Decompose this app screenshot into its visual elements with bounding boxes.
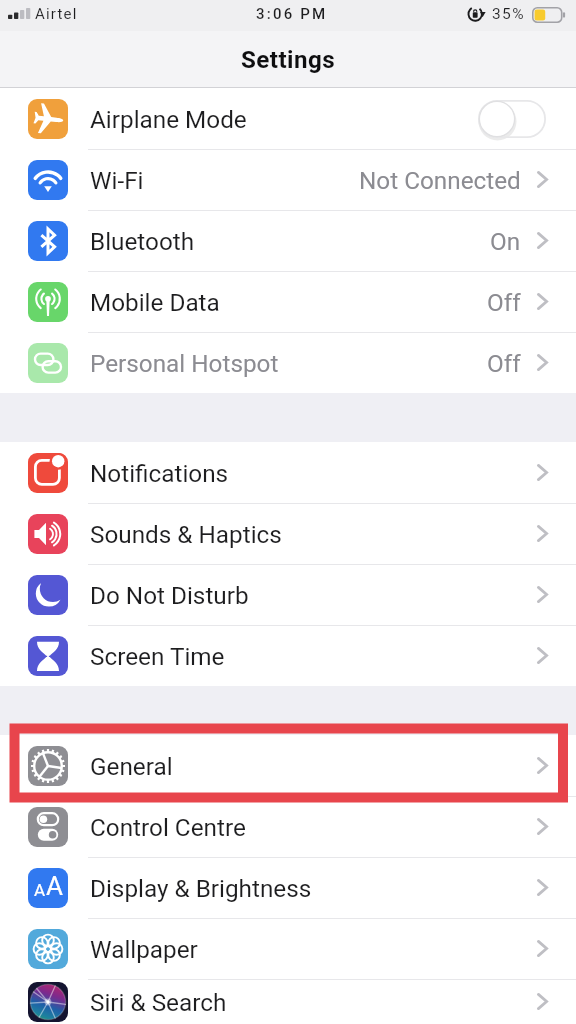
- staticText: Airplane Mode: [90, 105, 247, 133]
- button[interactable]: Airplane Mode toggle, off: [478, 100, 546, 138]
- staticText: Bluetooth: [90, 227, 195, 255]
- staticText: A: [46, 871, 63, 901]
- staticText: Off: [487, 288, 521, 316]
- staticText: 35%: [492, 5, 525, 23]
- button[interactable]: Control Centre: [0, 796, 576, 857]
- staticText: Airtel: [35, 5, 78, 23]
- button[interactable]: Sounds & Haptics: [0, 503, 576, 564]
- button[interactable]: Siri & Search: [0, 979, 576, 1024]
- staticText: Mobile Data: [90, 288, 220, 316]
- staticText: On: [490, 227, 521, 255]
- button[interactable]: Wallpaper: [0, 918, 576, 979]
- button[interactable]: Screen Time: [0, 625, 576, 686]
- button[interactable]: Notifications: [0, 442, 576, 503]
- staticText: Siri & Search: [90, 988, 227, 1016]
- staticText: Display & Brightness: [90, 874, 312, 902]
- staticText: 3:06 PM: [256, 5, 328, 23]
- button[interactable]: Personal Hotspot: [0, 332, 576, 393]
- staticText: Settings: [241, 46, 336, 74]
- staticText: Personal Hotspot: [90, 349, 279, 377]
- staticText: A: [34, 880, 46, 900]
- button[interactable]: Mobile Data: [0, 271, 576, 332]
- button[interactable]: Do Not Disturb: [0, 564, 576, 625]
- button[interactable]: A: [0, 857, 576, 918]
- staticText: Notifications: [90, 459, 229, 487]
- staticText: Sounds & Haptics: [90, 520, 282, 548]
- button[interactable]: Airplane Mode: [0, 88, 576, 149]
- button[interactable]: Wi-Fi: [0, 149, 576, 210]
- button[interactable]: Bluetooth: [0, 210, 576, 271]
- staticText: Not Connected: [359, 166, 521, 194]
- button[interactable]: General: [0, 735, 576, 796]
- staticText: Control Centre: [90, 813, 246, 841]
- staticText: Off: [487, 349, 521, 377]
- staticText: Wi-Fi: [90, 166, 144, 194]
- staticText: Wallpaper: [90, 935, 198, 963]
- staticText: General: [90, 752, 173, 780]
- staticText: Screen Time: [90, 642, 225, 670]
- other: Rotation lock: [468, 7, 484, 21]
- staticText: Do Not Disturb: [90, 581, 249, 609]
